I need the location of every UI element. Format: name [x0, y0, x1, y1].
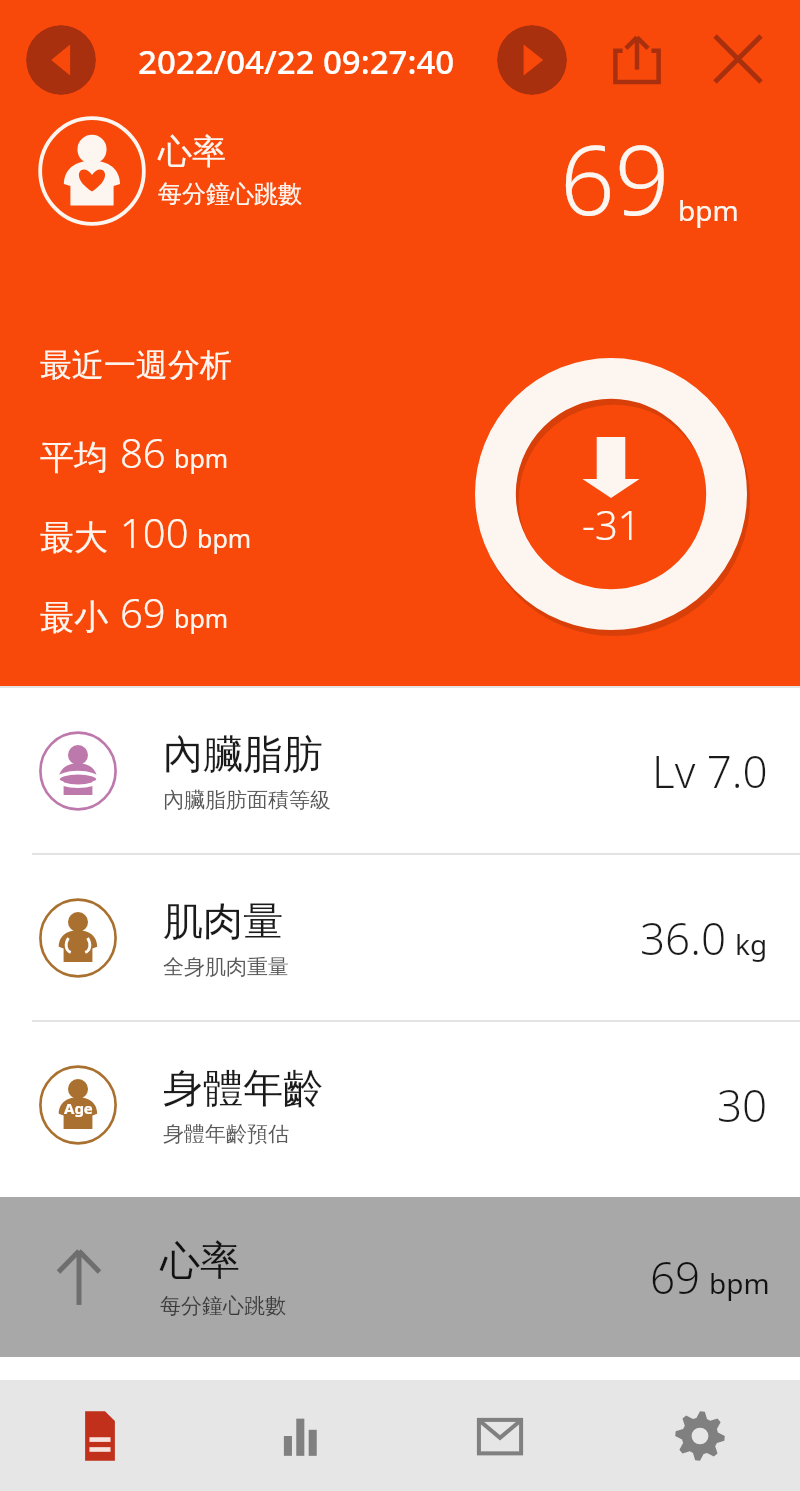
- button[interactable]: Messages: [400, 1380, 600, 1491]
- staticText: 2022/04/22 09:27:40: [138, 39, 455, 84]
- button[interactable]: Next: [497, 25, 567, 95]
- button[interactable]: Records: [0, 1380, 200, 1491]
- staticText: 每分鐘心跳數: [160, 1293, 286, 1319]
- staticText: kg: [735, 925, 768, 963]
- staticText: 69: [560, 112, 670, 243]
- button[interactable]: Charts: [200, 1380, 400, 1491]
- staticText: 69: [650, 1247, 701, 1307]
- staticText: 36.0: [640, 908, 727, 968]
- button[interactable]: Age: [0, 1022, 800, 1187]
- staticText: 86: [120, 425, 166, 479]
- staticText: Lv 7.0: [652, 741, 768, 801]
- staticText: 30: [717, 1075, 768, 1135]
- other: Selected: [48, 1246, 110, 1308]
- staticText: 最小: [40, 596, 108, 639]
- staticText: bpm: [174, 601, 229, 635]
- staticText: bpm: [197, 521, 252, 555]
- staticText: 身體年齡: [163, 1063, 323, 1113]
- staticText: 內臟脂肪面積等級: [163, 787, 331, 813]
- button[interactable]: Settings: [600, 1380, 800, 1491]
- staticText: -31: [582, 497, 641, 551]
- staticText: 心率: [158, 130, 226, 173]
- button[interactable]: 肌肉量: [0, 855, 800, 1020]
- button[interactable]: 內臟脂肪: [0, 688, 800, 853]
- staticText: 心率: [160, 1235, 240, 1285]
- button[interactable]: Previous: [26, 25, 96, 95]
- staticText: 肌肉量: [163, 896, 283, 946]
- staticText: 內臟脂肪: [163, 729, 323, 779]
- staticText: 最近一週分析: [40, 345, 232, 385]
- staticText: bpm: [174, 441, 229, 475]
- staticText: bpm: [709, 1264, 770, 1302]
- staticText: 全身肌肉重量: [163, 954, 289, 980]
- button[interactable]: Share: [604, 26, 670, 92]
- staticText: 平均: [40, 436, 108, 479]
- staticText: 100: [120, 505, 189, 559]
- staticText: 69: [120, 585, 166, 639]
- staticText: 最大: [40, 516, 108, 559]
- staticText: 身體年齡預估: [163, 1121, 289, 1147]
- button[interactable]: Selected: [0, 1197, 800, 1357]
- staticText: 每分鐘心跳數: [158, 179, 302, 209]
- staticText: Age: [64, 1098, 93, 1118]
- button[interactable]: Close: [705, 26, 771, 92]
- staticText: bpm: [678, 191, 739, 229]
